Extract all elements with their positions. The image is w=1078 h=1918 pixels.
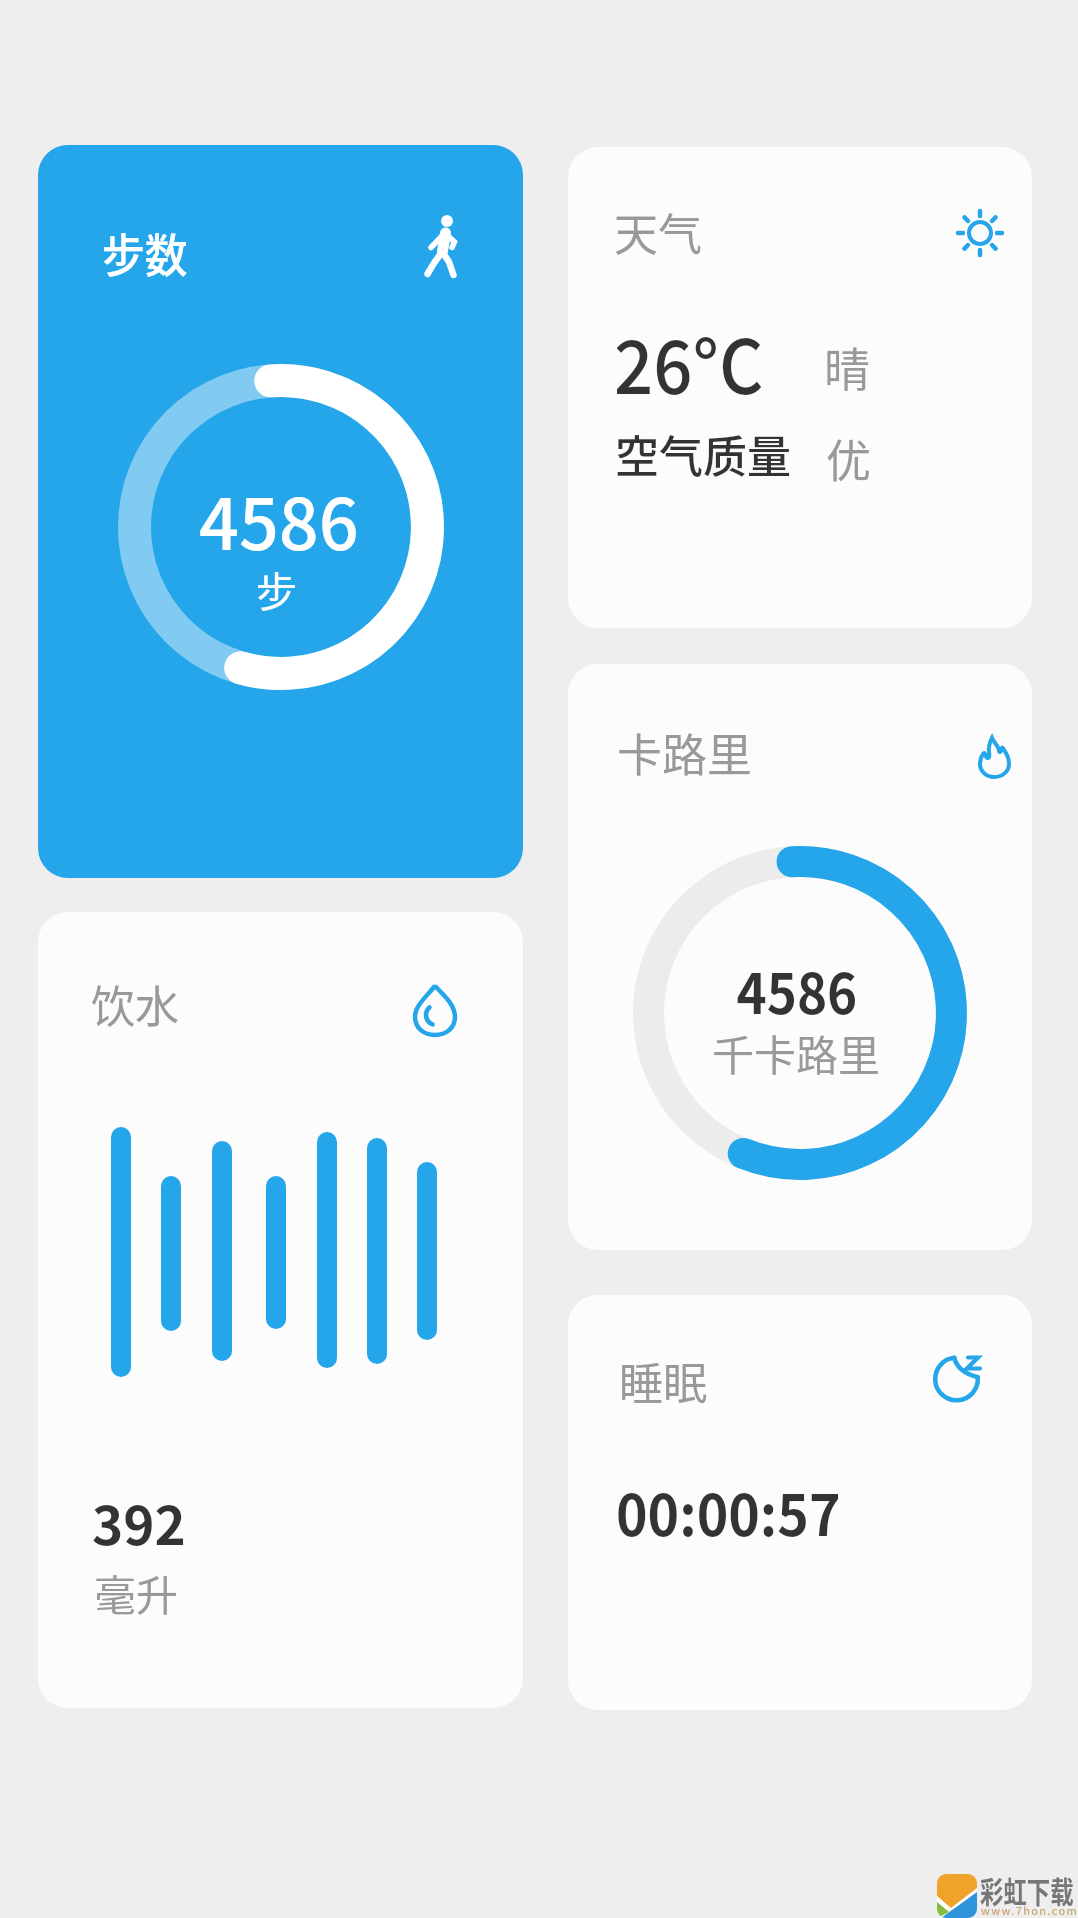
staticText: 步 [256, 559, 297, 618]
staticText: 彩虹下载 [980, 1868, 1074, 1911]
staticText: www.7hon.com [981, 1902, 1078, 1918]
staticText: 晴 [824, 333, 870, 400]
staticText: 空气质量 [615, 422, 791, 486]
button[interactable]: 睡眠 [568, 1295, 1032, 1710]
staticText: 00:00:57 [616, 1470, 841, 1553]
button[interactable]: 卡路里 [568, 664, 1032, 1250]
staticText: 392 [92, 1484, 186, 1561]
staticText: 优 [826, 426, 872, 491]
staticText: 睡眠 [619, 1349, 707, 1413]
staticText: 26°C [614, 308, 764, 415]
staticText: 4586 [736, 950, 857, 1030]
staticText: 饮水 [91, 972, 179, 1036]
button[interactable]: 饮水 [38, 912, 523, 1708]
staticText: 4586 [199, 469, 359, 570]
staticText: 毫升 [94, 1562, 179, 1623]
staticText: 天气 [614, 200, 702, 264]
staticText: 步数 [102, 219, 188, 286]
staticText: 卡路里 [617, 720, 753, 785]
button[interactable]: 步数 [38, 145, 523, 878]
button[interactable]: 天气 [568, 147, 1032, 628]
staticText: 千卡路里 [712, 1022, 881, 1083]
